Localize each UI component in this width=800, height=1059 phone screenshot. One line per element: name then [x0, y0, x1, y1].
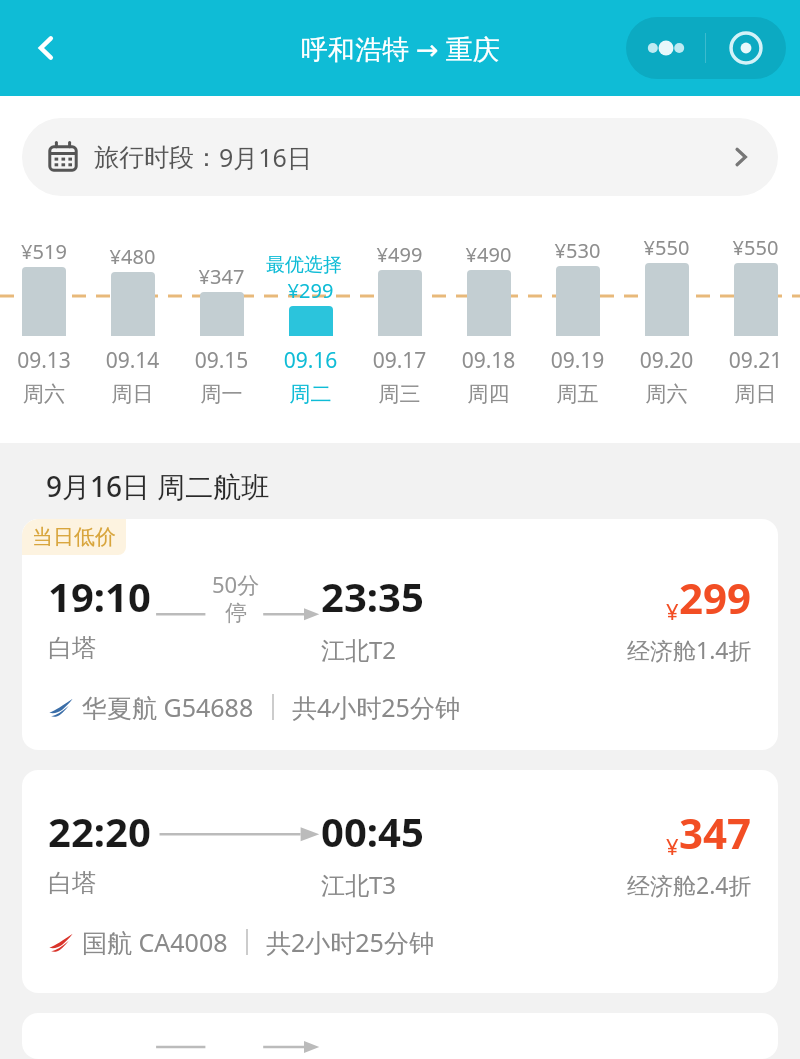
button[interactable]: ¥550 — [622, 218, 711, 443]
staticText: 旅行时段： — [94, 142, 219, 173]
button[interactable]: 旅行时段： — [22, 118, 778, 196]
staticText: ¥519 — [0, 238, 88, 265]
staticText: 00:45 — [321, 804, 424, 858]
button[interactable]: ¥519 — [0, 218, 88, 443]
staticText: 19:10 — [48, 569, 151, 623]
staticText: 09.18 — [444, 346, 533, 375]
button[interactable]: 当日低价 — [22, 519, 778, 750]
staticText: 周一 — [177, 381, 266, 407]
staticText: 09.16 — [266, 346, 355, 375]
staticText: 周三 — [355, 381, 444, 407]
staticText: 09.15 — [177, 346, 266, 375]
staticText: 50分 — [212, 569, 260, 599]
staticText: 23:35 — [321, 569, 424, 623]
staticText: 09.13 — [0, 346, 88, 375]
staticText: 最优选择 — [266, 253, 355, 277]
staticText: 347 — [679, 804, 752, 861]
staticText: 周二 — [266, 381, 355, 407]
staticText: ¥490 — [444, 241, 533, 268]
staticText: 华夏航 G54688 — [82, 690, 254, 724]
staticText: ¥550 — [711, 234, 800, 261]
staticText: ¥347 — [177, 263, 266, 290]
staticText: 江北T2 — [321, 633, 397, 666]
staticText: 22:20 — [48, 804, 151, 858]
staticText: ¥499 — [355, 241, 444, 268]
button[interactable]: 最优选择 — [266, 218, 355, 443]
button[interactable]: 16:00 — [22, 1013, 778, 1059]
button[interactable]: ¥499 — [355, 218, 444, 443]
button[interactable]: ¥550 — [711, 218, 800, 443]
staticText: 江北T3 — [321, 868, 397, 901]
button[interactable]: Back — [18, 20, 74, 76]
staticText: 经济舱2.4折 — [627, 869, 752, 900]
staticText: ¥530 — [533, 237, 622, 264]
staticText: ¥550 — [622, 234, 711, 261]
staticText: 白塔 — [48, 633, 96, 663]
button[interactable]: Target — [706, 17, 786, 79]
staticText: 当日低价 — [32, 524, 116, 550]
staticText: 周四 — [444, 381, 533, 407]
staticText: 299 — [679, 569, 752, 626]
staticText: 共2小时25分钟 — [266, 925, 434, 959]
staticText: 周日 — [711, 381, 800, 407]
staticText: 9月16日 — [219, 140, 312, 174]
staticText: 呼和浩特 → 重庆 — [301, 30, 500, 67]
button[interactable]: More — [626, 17, 705, 79]
staticText: ¥480 — [88, 243, 177, 270]
staticText: 09.20 — [622, 346, 711, 375]
staticText: 周六 — [622, 381, 711, 407]
staticText: 共4小时25分钟 — [292, 690, 460, 724]
button[interactable]: ¥480 — [88, 218, 177, 443]
button[interactable]: ¥490 — [444, 218, 533, 443]
button[interactable]: ¥530 — [533, 218, 622, 443]
staticText: ¥ — [666, 596, 679, 626]
staticText: ¥ — [666, 831, 679, 861]
staticText: 周五 — [533, 381, 622, 407]
staticText: 09.17 — [355, 346, 444, 375]
button[interactable]: ¥347 — [177, 218, 266, 443]
staticText: 国航 CA4008 — [82, 925, 228, 959]
staticText: 周六 — [0, 381, 88, 407]
staticText: 停 — [225, 599, 247, 627]
button[interactable]: 22:20 — [22, 770, 778, 993]
staticText: 9月16日 周二航班 — [46, 467, 270, 505]
staticText: ¥299 — [266, 277, 355, 304]
staticText: 白塔 — [48, 868, 96, 898]
staticText: 09.19 — [533, 346, 622, 375]
staticText: 09.14 — [88, 346, 177, 375]
staticText: 09.21 — [711, 346, 800, 375]
staticText: 周日 — [88, 381, 177, 407]
staticText: 经济舱1.4折 — [627, 634, 752, 665]
